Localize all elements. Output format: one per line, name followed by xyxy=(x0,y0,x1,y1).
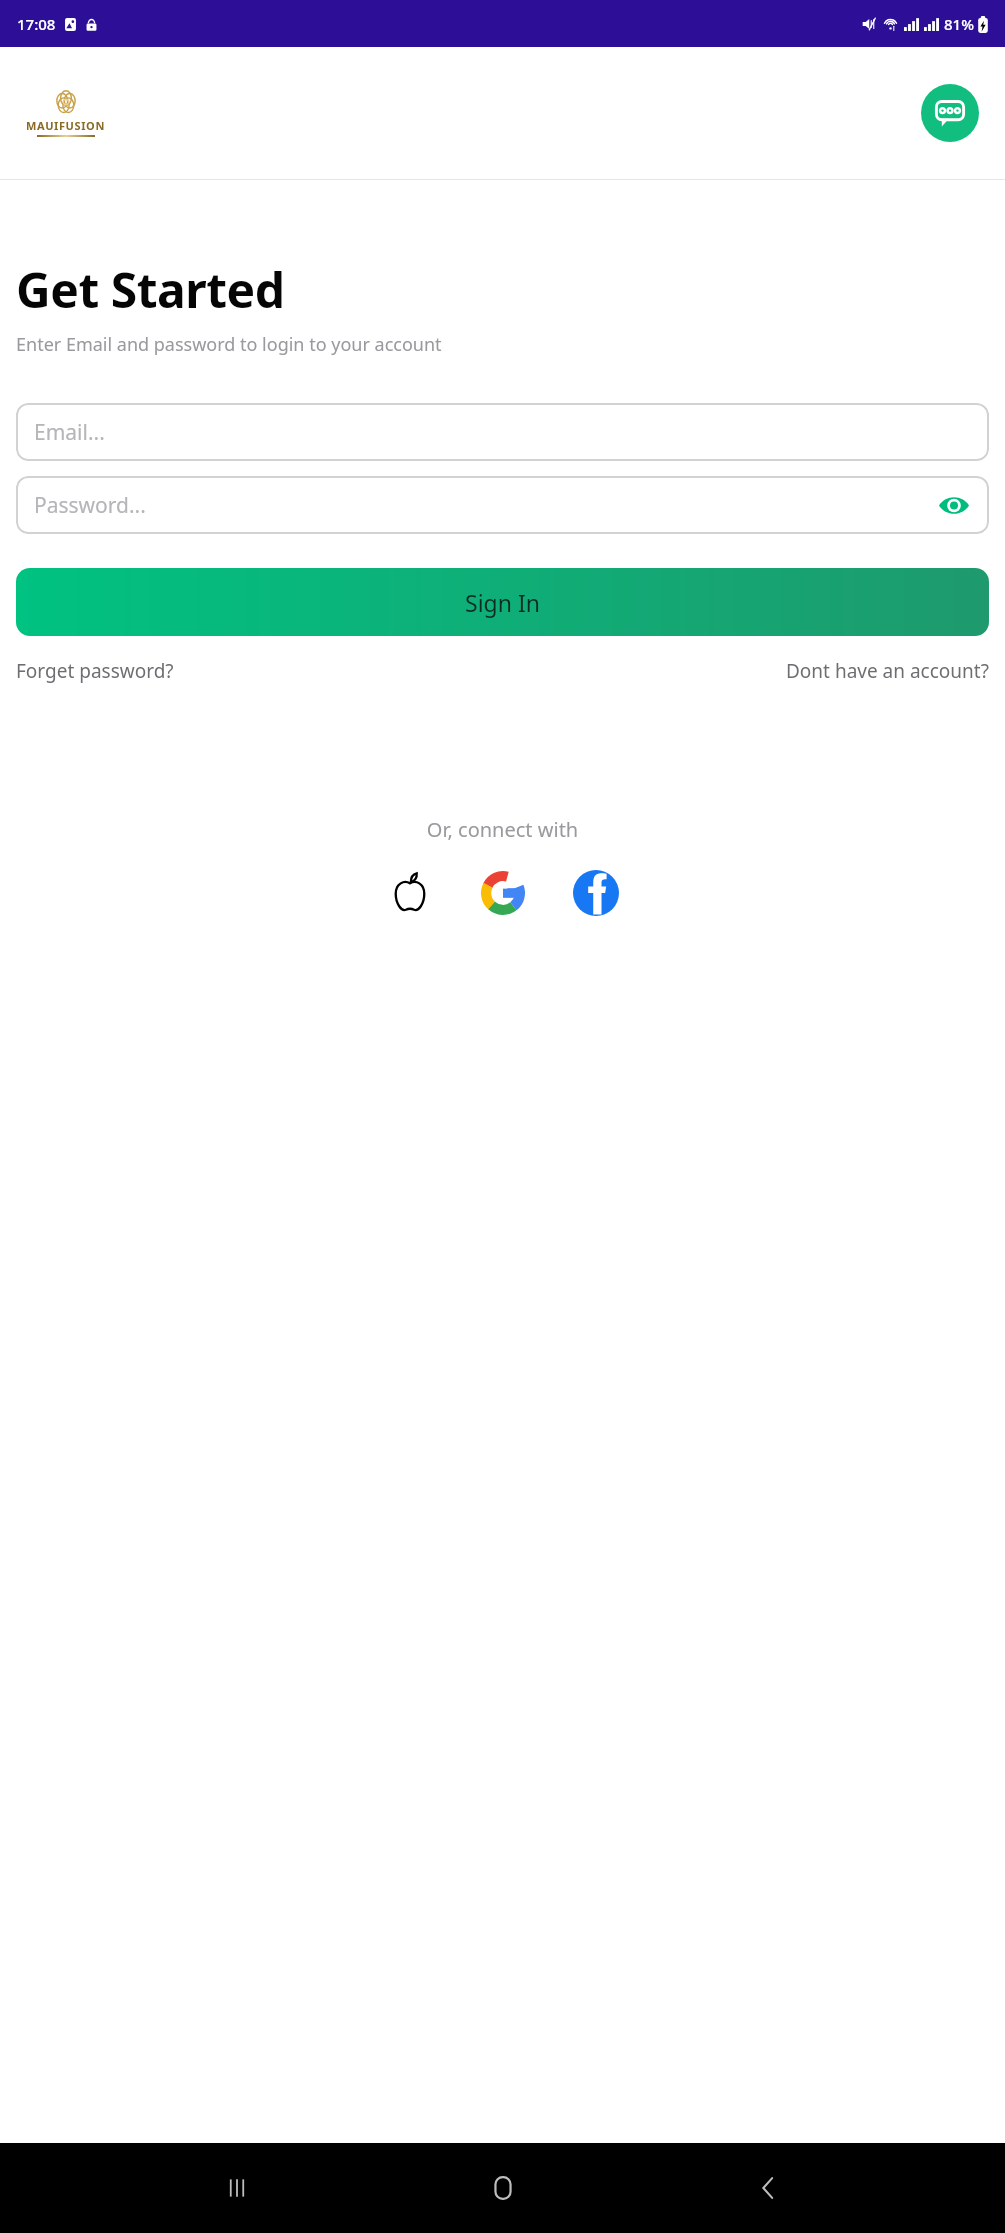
button[interactable]: Home xyxy=(474,2159,532,2217)
staticText: Dont have an account? xyxy=(786,658,989,684)
button[interactable]: Sign in with Google xyxy=(475,865,531,921)
button[interactable]: Show password xyxy=(937,488,971,522)
staticText: Password... xyxy=(34,491,146,520)
staticText: MAUIFUSION xyxy=(26,118,105,133)
button[interactable]: Recent apps xyxy=(208,2159,266,2217)
staticText: 17:08 xyxy=(17,14,56,34)
button[interactable]: Sign in with Facebook xyxy=(568,865,624,921)
staticText: Enter Email and password to login to you… xyxy=(16,332,442,357)
staticText: Or, connect with xyxy=(0,816,1005,843)
button[interactable]: Sign In xyxy=(16,568,989,636)
button[interactable]: Dont have an account? xyxy=(786,658,989,684)
staticText: Sign In xyxy=(465,587,540,618)
button[interactable]: Chat support xyxy=(921,84,979,142)
staticText: Forget password? xyxy=(16,658,174,684)
staticText: 81% xyxy=(944,14,974,34)
button[interactable]: Forget password? xyxy=(16,658,174,684)
button[interactable]: Sign in with Apple xyxy=(382,865,438,921)
button[interactable]: Mauifusion logo xyxy=(26,89,105,137)
button[interactable]: Email... xyxy=(16,403,989,461)
staticText: Get Started xyxy=(16,257,285,322)
button[interactable]: Password... xyxy=(16,476,989,534)
staticText: Email... xyxy=(34,418,105,447)
button[interactable]: Back xyxy=(739,2159,797,2217)
